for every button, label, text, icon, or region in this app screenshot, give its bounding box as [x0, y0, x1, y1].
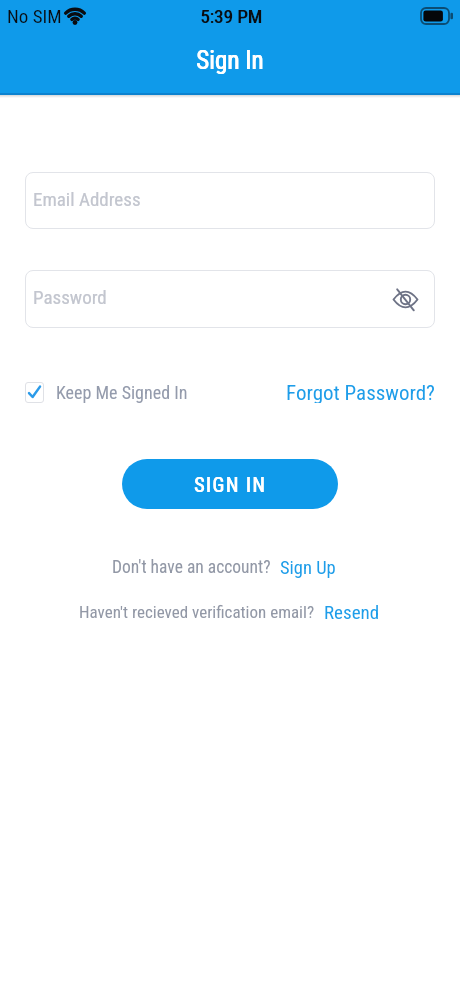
staticText: Don't have an account?	[112, 557, 271, 578]
staticText: Password	[33, 286, 107, 308]
button[interactable]: Sign Up	[280, 557, 336, 579]
button[interactable]: Resend	[324, 601, 380, 623]
button[interactable]: SIGN IN	[122, 459, 338, 509]
staticText: 5:39 PM	[201, 5, 263, 27]
staticText: Sign Up	[280, 557, 336, 579]
staticText: Haven't recieved verification email?	[79, 602, 315, 622]
staticText: SIGN IN	[194, 473, 267, 496]
staticText: No SIM	[7, 5, 62, 27]
button[interactable]: Password	[25, 270, 435, 328]
button[interactable]: Forgot Password?	[286, 381, 435, 403]
button[interactable]: Keep Me Signed In	[25, 382, 188, 403]
button[interactable]: Email Address	[25, 172, 435, 229]
staticText: Email Address	[33, 188, 141, 210]
staticText: Resend	[324, 601, 380, 623]
button[interactable]	[391, 285, 419, 313]
staticText: Keep Me Signed In	[56, 382, 188, 403]
staticText: Sign In	[197, 46, 265, 75]
staticText: Sign In	[196, 46, 264, 75]
staticText: SIGN IN	[194, 473, 267, 496]
staticText: 5:39 PM	[200, 5, 262, 27]
staticText: Forgot Password?	[286, 381, 435, 403]
